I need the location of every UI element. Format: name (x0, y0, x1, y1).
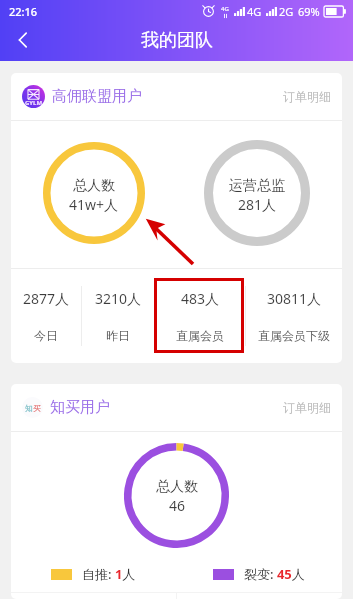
staticText: 运营总监 (229, 177, 285, 195)
staticText: 直属会员 (176, 328, 224, 343)
staticText: 2G (279, 4, 294, 19)
staticText: 知买用户 (50, 398, 110, 417)
button[interactable]: 3210人 (82, 269, 154, 363)
staticText: 知买 (25, 403, 41, 413)
staticText: 4G (247, 4, 262, 19)
button[interactable]: 2877人 (11, 269, 81, 363)
staticText: 41w+人 (69, 195, 119, 214)
staticText: 69% (298, 4, 320, 19)
button[interactable]: 订单明细 (283, 89, 331, 104)
staticText: 4G (221, 5, 229, 13)
button[interactable]: 运营总监 (176, 121, 337, 264)
staticText: 3210人 (95, 289, 142, 308)
staticText: 总人数 (73, 177, 115, 195)
staticText: 订单明细 (283, 400, 331, 415)
staticText: 22:16 (9, 4, 38, 19)
button[interactable]: 自推: 1人 (11, 556, 176, 592)
button[interactable]: 裂变: 45人 (176, 556, 342, 592)
staticText: 裂变: 45人 (244, 565, 305, 583)
staticText: GYLM (25, 99, 43, 107)
staticText: 我的团队 (141, 29, 213, 52)
staticText: 订单明细 (283, 89, 331, 104)
button[interactable]: 30811人 (246, 269, 342, 363)
staticText: 高佣联盟用户 (52, 87, 142, 106)
staticText: 昨日 (106, 328, 130, 343)
staticText: 今日 (34, 328, 58, 343)
staticText: 直属会员下级 (258, 328, 330, 343)
staticText: 2877人 (23, 289, 70, 308)
button[interactable]: Back (4, 21, 42, 59)
staticText: 281人 (238, 195, 277, 214)
button[interactable]: 总人数 (11, 121, 176, 264)
button[interactable]: 订单明细 (283, 400, 331, 415)
staticText: 483人 (181, 289, 220, 308)
button[interactable]: 483人 (155, 269, 245, 363)
staticText: 总人数 (156, 478, 198, 496)
staticText: 46 (169, 496, 186, 515)
staticText: 30811人 (267, 289, 322, 308)
staticText: 自推: 1人 (82, 565, 136, 583)
